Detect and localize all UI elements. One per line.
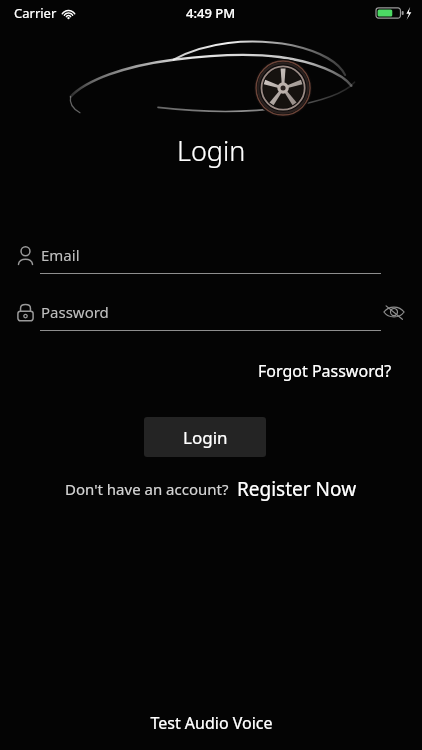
button[interactable]: Email: [0, 240, 422, 274]
staticText: Test Audio Voice: [150, 712, 273, 734]
staticText: 4:49 PM: [186, 4, 236, 22]
staticText: Don't have an account?: [65, 479, 229, 499]
staticText: Login: [177, 132, 246, 169]
button[interactable]: Forgot Password?: [254, 356, 396, 386]
staticText: Carrier: [14, 4, 57, 22]
staticText: Email: [41, 245, 80, 265]
staticText: Login: [183, 426, 228, 449]
button[interactable]: Login: [144, 417, 266, 457]
staticText: Forgot Password?: [258, 360, 392, 382]
button[interactable]: Show password: [381, 299, 407, 325]
button[interactable]: Password: [0, 297, 422, 331]
staticText: Register Now: [237, 476, 357, 502]
button[interactable]: Test Audio Voice: [140, 708, 283, 738]
staticText: Password: [41, 302, 109, 322]
button[interactable]: Register Now: [237, 476, 357, 502]
